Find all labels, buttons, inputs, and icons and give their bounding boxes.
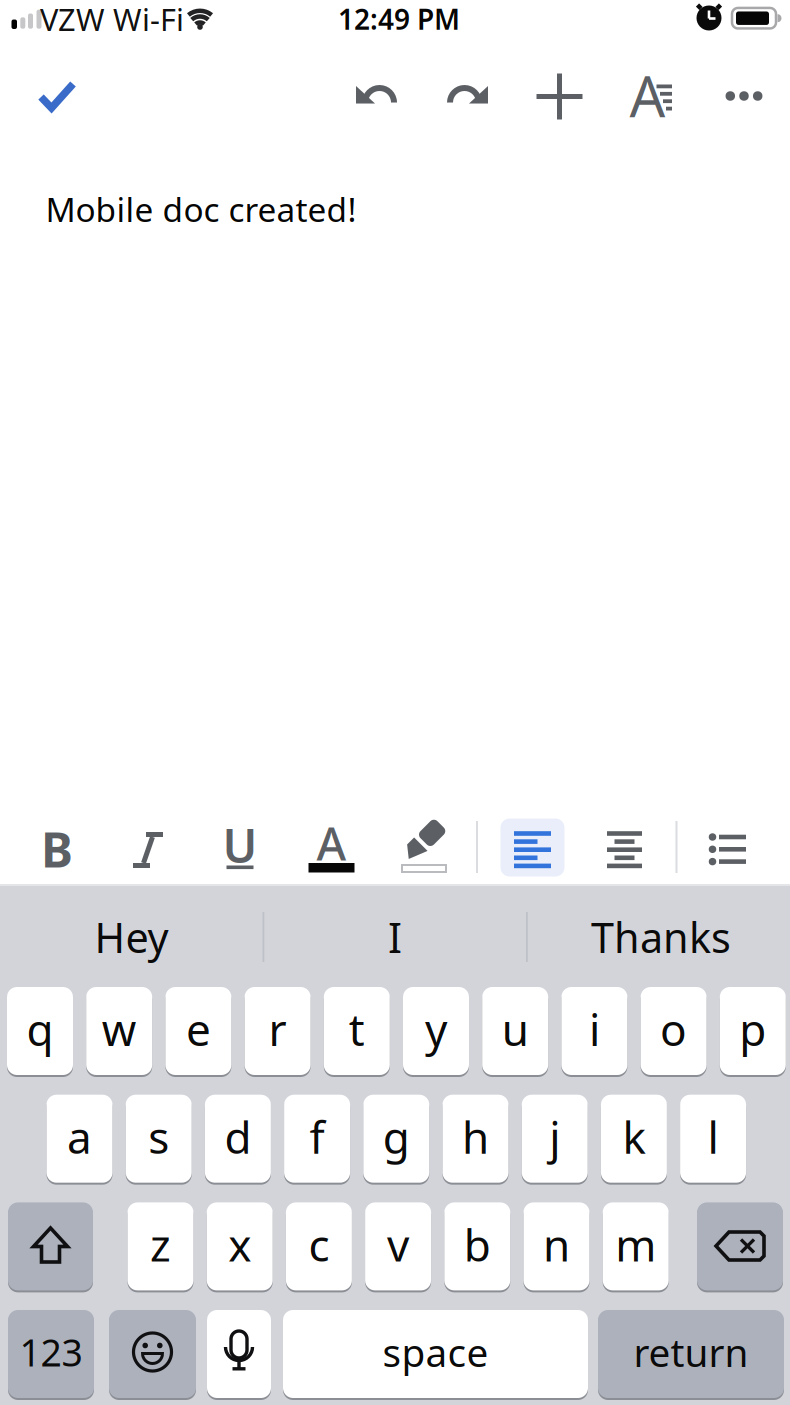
staticText: r bbox=[269, 1000, 287, 1058]
button[interactable]: space bbox=[283, 1308, 588, 1400]
button[interactable]: z bbox=[127, 1200, 193, 1292]
button[interactable] bbox=[697, 1200, 783, 1292]
button[interactable] bbox=[0, 0, 790, 1405]
button[interactable] bbox=[8, 1200, 93, 1292]
staticText: x bbox=[228, 1215, 251, 1274]
button[interactable]: u bbox=[482, 985, 548, 1077]
button[interactable]: g bbox=[363, 1093, 429, 1185]
staticText: return bbox=[633, 1326, 748, 1378]
button[interactable]: v bbox=[365, 1200, 431, 1292]
button[interactable]: w bbox=[86, 985, 152, 1077]
button[interactable] bbox=[0, 0, 790, 1405]
button[interactable] bbox=[109, 1308, 196, 1400]
button[interactable] bbox=[0, 0, 790, 1405]
button[interactable]: r bbox=[245, 985, 311, 1077]
staticText: h bbox=[462, 1107, 489, 1166]
staticText: f bbox=[310, 1107, 325, 1166]
staticText: 12:49 PM bbox=[338, 0, 460, 38]
staticText: A bbox=[629, 58, 665, 133]
staticText: 123 bbox=[19, 1327, 82, 1377]
staticText: I bbox=[388, 910, 402, 964]
button[interactable]: n bbox=[523, 1200, 589, 1292]
staticText: c bbox=[308, 1215, 329, 1274]
button[interactable]: Hey bbox=[6, 887, 256, 986]
button[interactable]: l bbox=[680, 1093, 746, 1185]
button[interactable] bbox=[0, 0, 790, 1405]
staticText: p bbox=[739, 1000, 766, 1058]
button[interactable]: I bbox=[270, 887, 520, 986]
staticText: b bbox=[464, 1215, 491, 1274]
staticText: Hey bbox=[94, 910, 168, 964]
button[interactable]: Thanks bbox=[536, 887, 786, 986]
button[interactable] bbox=[0, 0, 790, 1405]
button[interactable]: h bbox=[442, 1093, 508, 1185]
staticText: Thanks bbox=[591, 910, 731, 964]
button[interactable]: 123 bbox=[8, 1308, 94, 1400]
button[interactable]: p bbox=[720, 985, 786, 1077]
button[interactable]: c bbox=[286, 1200, 352, 1292]
button[interactable]: a bbox=[46, 1093, 112, 1185]
staticText: y bbox=[425, 1000, 447, 1058]
button[interactable]: k bbox=[601, 1093, 667, 1185]
staticText: B bbox=[41, 817, 73, 881]
staticText: A bbox=[316, 813, 346, 873]
staticText: m bbox=[615, 1215, 656, 1274]
staticText: l bbox=[708, 1107, 719, 1166]
button[interactable] bbox=[0, 0, 790, 1405]
button[interactable]: f bbox=[284, 1093, 350, 1185]
button[interactable]: y bbox=[403, 985, 469, 1077]
button[interactable]: o bbox=[641, 985, 707, 1077]
button[interactable]: d bbox=[205, 1093, 271, 1185]
staticText: q bbox=[26, 1000, 53, 1058]
button[interactable] bbox=[207, 1308, 271, 1400]
staticText: t bbox=[349, 1000, 365, 1058]
button[interactable]: A bbox=[0, 0, 790, 1405]
staticText: i bbox=[589, 1000, 600, 1058]
staticText: space bbox=[382, 1326, 488, 1378]
button[interactable]: U bbox=[0, 0, 790, 1405]
staticText: j bbox=[549, 1107, 560, 1166]
button[interactable]: s bbox=[126, 1093, 192, 1185]
button[interactable]: i bbox=[561, 985, 627, 1077]
staticText: v bbox=[387, 1215, 409, 1274]
button[interactable] bbox=[0, 0, 790, 1405]
button[interactable]: B bbox=[0, 0, 790, 1405]
button[interactable]: t bbox=[324, 985, 390, 1077]
staticText: a bbox=[67, 1107, 92, 1166]
button[interactable]: q bbox=[7, 985, 73, 1077]
staticText: e bbox=[186, 1000, 211, 1058]
staticText: o bbox=[660, 1000, 687, 1058]
button[interactable]: x bbox=[207, 1200, 273, 1292]
staticText: n bbox=[543, 1215, 570, 1274]
staticText: u bbox=[502, 1000, 529, 1058]
staticText: Mobile doc created! bbox=[45, 187, 356, 231]
button[interactable] bbox=[0, 0, 790, 1405]
staticText: g bbox=[383, 1107, 410, 1166]
button[interactable]: e bbox=[165, 985, 231, 1077]
staticText: VZW Wi-Fi bbox=[40, 0, 184, 39]
button[interactable]: m bbox=[603, 1200, 669, 1292]
staticText: U bbox=[222, 814, 257, 876]
button[interactable]: return bbox=[598, 1308, 784, 1400]
staticText: s bbox=[148, 1107, 169, 1166]
button[interactable]: j bbox=[522, 1093, 588, 1185]
staticText: z bbox=[150, 1215, 171, 1274]
staticText: k bbox=[622, 1107, 645, 1166]
staticText: w bbox=[102, 1000, 137, 1058]
button[interactable]: A bbox=[0, 0, 790, 1405]
staticText: d bbox=[224, 1107, 251, 1166]
button[interactable] bbox=[0, 0, 790, 1405]
button[interactable]: b bbox=[444, 1200, 510, 1292]
button[interactable] bbox=[0, 0, 790, 140]
